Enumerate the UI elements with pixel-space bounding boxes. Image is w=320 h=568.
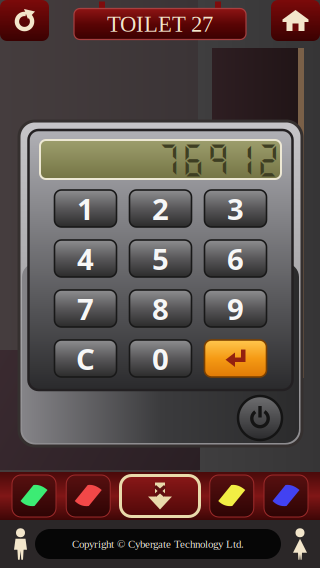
button[interactable]: Restart level [0, 0, 49, 41]
button[interactable]: Inventory item [210, 475, 254, 517]
button[interactable]: Power [238, 396, 282, 440]
staticText: C [76, 339, 95, 378]
button[interactable]: Enter code [204, 340, 266, 377]
button[interactable]: 1 [54, 190, 116, 227]
staticText: 9 [227, 289, 244, 328]
staticText: 4 [77, 239, 94, 278]
staticText: 0 [152, 339, 169, 378]
button[interactable]: 2 [129, 190, 191, 227]
button[interactable]: 5 [129, 240, 191, 277]
button[interactable]: 3 [204, 190, 266, 227]
button[interactable]: Inventory item [264, 475, 308, 517]
button[interactable]: Inventory item [66, 475, 110, 517]
button[interactable]: 6 [204, 240, 266, 277]
button[interactable]: C [54, 340, 116, 377]
staticText: 3 [227, 189, 244, 228]
staticText: Copyright © Cybergate Technology Ltd. [72, 538, 244, 550]
button[interactable]: 0 [129, 340, 191, 377]
button[interactable]: TOILET 27 [74, 1, 246, 39]
button[interactable]: 9 [204, 290, 266, 327]
button[interactable]: 4 [54, 240, 116, 277]
staticText: 8 [152, 289, 169, 328]
staticText: 7 [77, 289, 94, 328]
staticText: 6 [227, 239, 244, 278]
button[interactable]: Drop item [120, 475, 199, 516]
staticText: 2 [152, 189, 169, 228]
staticText: 1 [77, 189, 94, 228]
button[interactable]: 8 [129, 290, 191, 327]
button[interactable]: Home [271, 0, 320, 41]
staticText: 5 [152, 239, 169, 278]
button[interactable]: Inventory item [12, 475, 56, 517]
button[interactable]: 7 [54, 290, 116, 327]
staticText: TOILET 27 [107, 11, 213, 36]
staticText: 76912 [156, 140, 281, 179]
